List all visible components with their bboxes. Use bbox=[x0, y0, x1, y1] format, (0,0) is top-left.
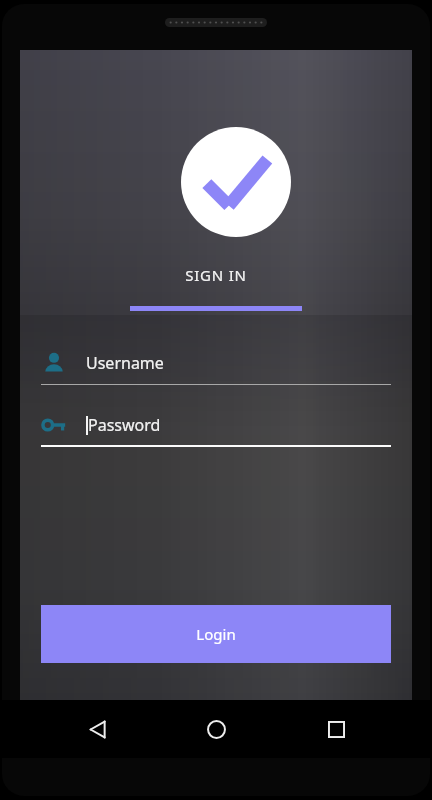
staticText: Password bbox=[88, 414, 161, 436]
button[interactable]: Home bbox=[193, 706, 239, 752]
staticText: SIGN IN bbox=[185, 265, 247, 285]
staticText: Login bbox=[196, 624, 236, 644]
other: App logo bbox=[181, 127, 291, 237]
button[interactable]: Recent apps bbox=[313, 706, 359, 752]
staticText: Username bbox=[86, 352, 164, 374]
button[interactable]: Back bbox=[74, 706, 120, 752]
button[interactable]: Password bbox=[41, 412, 391, 447]
button[interactable]: Login bbox=[41, 605, 391, 663]
button[interactable]: SIGN IN bbox=[130, 265, 302, 311]
button[interactable]: Username bbox=[41, 350, 391, 385]
